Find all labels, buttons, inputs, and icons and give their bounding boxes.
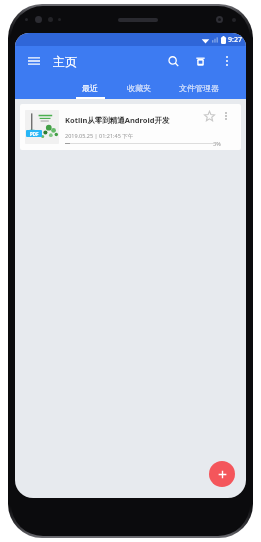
button[interactable]: PDF: [20, 104, 241, 150]
button[interactable]: Item options: [219, 109, 233, 123]
button[interactable]: 收藏夹: [113, 76, 164, 99]
button[interactable]: More options: [216, 50, 238, 72]
staticText: 2019.05.25 | 01:21:45 下午: [65, 132, 134, 140]
button[interactable]: Add: [209, 461, 235, 487]
button[interactable]: Open navigation menu: [23, 50, 45, 72]
staticText: 9:27: [228, 35, 242, 45]
staticText: 收藏夹: [127, 83, 151, 93]
staticText: PDF: [30, 131, 39, 137]
staticText: Kotlin从零到精通Android开发: [65, 115, 170, 125]
staticText: 最近: [82, 83, 98, 93]
button[interactable]: Favorite: [201, 108, 217, 124]
button[interactable]: 文件管理器: [164, 76, 234, 99]
button[interactable]: 最近: [67, 76, 113, 99]
button[interactable]: Delete: [189, 50, 211, 72]
staticText: 主页: [53, 54, 77, 69]
staticText: 文件管理器: [179, 83, 219, 93]
staticText: 3%: [213, 140, 221, 147]
button[interactable]: Search: [162, 50, 184, 72]
